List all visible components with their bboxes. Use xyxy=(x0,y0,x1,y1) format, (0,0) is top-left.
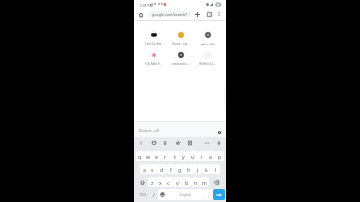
button[interactable]: i xyxy=(197,151,206,161)
button[interactable]: Reflekt Co... xyxy=(194,50,221,68)
staticText: a xyxy=(143,166,146,173)
button[interactable]: e xyxy=(152,151,161,161)
button[interactable]: d xyxy=(157,164,166,174)
button[interactable]: u xyxy=(188,151,197,161)
staticText: بحث مباشر xyxy=(200,42,215,46)
button[interactable]: Shift xyxy=(136,177,148,187)
button[interactable]: g xyxy=(175,164,184,174)
staticText: r xyxy=(164,153,167,160)
button[interactable]: a xyxy=(140,164,148,174)
button[interactable]: / xyxy=(149,189,158,200)
staticText: q xyxy=(138,153,142,160)
button[interactable]: www.odn.c... xyxy=(167,50,194,68)
button[interactable]: Clipboard xyxy=(161,139,169,147)
button[interactable]: k xyxy=(202,164,211,174)
staticText: Full Match ... xyxy=(145,62,163,66)
staticText: / xyxy=(153,192,155,198)
button[interactable]: s xyxy=(148,164,157,174)
button[interactable]: x xyxy=(156,177,164,187)
button[interactable]: l xyxy=(211,164,220,174)
button[interactable]: r xyxy=(161,151,170,161)
button[interactable]: Roma - sta... xyxy=(167,30,194,48)
button[interactable]: Voice input xyxy=(215,139,223,147)
staticText: s xyxy=(151,166,154,173)
button[interactable]: z xyxy=(148,177,156,187)
button[interactable]: Themes xyxy=(174,139,182,147)
button[interactable]: Backspace xyxy=(209,177,224,187)
button[interactable]: Live Cricket - xyxy=(140,30,167,48)
staticText: z xyxy=(151,179,154,186)
staticText: v xyxy=(176,179,179,186)
button[interactable]: بحث مباشر xyxy=(194,30,221,48)
button[interactable]: Home xyxy=(137,11,145,19)
staticText: d xyxy=(160,166,164,173)
staticText: n xyxy=(194,179,198,186)
button[interactable]: j xyxy=(193,164,202,174)
button[interactable]: Full Match ... xyxy=(140,50,167,68)
button[interactable]: New tab xyxy=(193,10,201,18)
staticText: u xyxy=(191,153,195,160)
staticText: g xyxy=(178,166,182,173)
staticText: j xyxy=(197,166,199,173)
staticText: y xyxy=(182,153,185,160)
staticText: Discover - off xyxy=(139,129,159,133)
button[interactable]: Text editing xyxy=(186,139,194,147)
button[interactable]: w xyxy=(144,151,152,161)
button[interactable]: Enter xyxy=(213,189,225,200)
button[interactable]: Stickers xyxy=(150,139,158,147)
button[interactable]: . xyxy=(204,189,213,200)
button[interactable]: More options xyxy=(215,10,223,18)
staticText: m xyxy=(202,179,207,186)
staticText: p xyxy=(218,153,222,160)
button[interactable]: c xyxy=(164,177,173,187)
button[interactable]: m xyxy=(200,177,209,187)
staticText: Roma - sta... xyxy=(172,42,190,46)
button[interactable]: h xyxy=(184,164,193,174)
button[interactable]: More xyxy=(203,139,211,147)
staticText: f xyxy=(170,166,172,173)
staticText: i xyxy=(201,153,203,160)
button[interactable]: Expand toolbar xyxy=(137,139,145,147)
button[interactable]: t xyxy=(170,151,179,161)
staticText: Reflekt Co... xyxy=(199,62,216,66)
staticText: b xyxy=(185,179,189,186)
staticText: c xyxy=(167,179,170,186)
staticText: English xyxy=(180,193,191,197)
button[interactable]: google.com/search? xyxy=(148,11,191,17)
staticText: Live Cricket - xyxy=(145,42,163,46)
staticText: . xyxy=(208,192,210,198)
staticText: ?123 xyxy=(139,193,146,197)
staticText: 0 xyxy=(209,13,211,17)
button[interactable]: v xyxy=(173,177,182,187)
staticText: google.com/search? xyxy=(152,12,187,17)
button[interactable]: ?123 xyxy=(135,189,149,200)
staticText: o xyxy=(209,153,213,160)
staticText: k xyxy=(205,166,208,173)
staticText: www.odn.c... xyxy=(172,62,190,66)
button[interactable]: f xyxy=(166,164,175,174)
staticText: 1:31 PM xyxy=(140,3,153,8)
button[interactable]: b xyxy=(182,177,191,187)
button[interactable]: English xyxy=(167,189,204,200)
staticText: e xyxy=(155,153,158,160)
button[interactable]: Discover settings xyxy=(215,128,223,136)
button[interactable]: Emoji xyxy=(158,189,167,200)
staticText: w xyxy=(146,153,151,160)
button[interactable]: Switch tabs xyxy=(205,10,213,18)
button[interactable]: q xyxy=(136,151,144,161)
button[interactable]: p xyxy=(215,151,224,161)
staticText: h xyxy=(187,166,191,173)
staticText: l xyxy=(215,166,217,173)
staticText: x xyxy=(159,179,162,186)
staticText: t xyxy=(174,153,176,160)
button[interactable]: o xyxy=(206,151,215,161)
button[interactable]: n xyxy=(191,177,200,187)
button[interactable]: y xyxy=(179,151,188,161)
